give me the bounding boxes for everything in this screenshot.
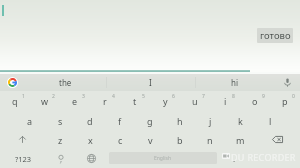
staticText: k bbox=[238, 115, 243, 127]
staticText: b bbox=[177, 134, 183, 146]
button[interactable]: Space bbox=[109, 152, 217, 164]
staticText: 5 bbox=[142, 93, 145, 100]
staticText: z bbox=[58, 134, 63, 146]
button[interactable]: c bbox=[105, 130, 135, 149]
button[interactable]: f bbox=[105, 111, 135, 130]
staticText: 2 bbox=[52, 93, 55, 100]
button[interactable]: q bbox=[0, 91, 30, 111]
staticText: 0 bbox=[292, 93, 295, 100]
staticText: q bbox=[12, 95, 18, 107]
staticText: p bbox=[282, 95, 288, 107]
button[interactable]: Shift bbox=[0, 130, 45, 149]
button[interactable]: y bbox=[150, 91, 180, 111]
button[interactable]: a bbox=[15, 111, 45, 130]
button[interactable]: l bbox=[255, 111, 285, 130]
button[interactable]: r bbox=[90, 91, 120, 111]
staticText: a bbox=[27, 115, 33, 127]
button[interactable]: Google Search bbox=[0, 74, 24, 91]
staticText: j bbox=[209, 115, 212, 127]
staticText: u bbox=[192, 95, 198, 107]
staticText: I bbox=[149, 77, 152, 88]
staticText: 4 bbox=[112, 93, 115, 100]
staticText: d bbox=[87, 115, 93, 127]
staticText: 6 bbox=[172, 93, 175, 100]
staticText: n bbox=[207, 134, 213, 146]
button[interactable]: v bbox=[135, 130, 165, 149]
button[interactable]: Emoji bbox=[46, 149, 76, 168]
staticText: 1 bbox=[22, 93, 25, 100]
staticText: l bbox=[269, 115, 272, 127]
button[interactable]: p bbox=[270, 91, 300, 111]
staticText: v bbox=[148, 134, 153, 146]
button[interactable]: hi bbox=[195, 74, 274, 91]
button[interactable]: g bbox=[135, 111, 165, 130]
staticText: w bbox=[41, 95, 49, 107]
button[interactable]: k bbox=[225, 111, 255, 130]
staticText: y bbox=[163, 95, 168, 107]
staticText: 9 bbox=[262, 93, 265, 100]
staticText: hi bbox=[231, 77, 239, 88]
staticText: e bbox=[72, 95, 78, 107]
button[interactable]: u bbox=[180, 91, 210, 111]
button[interactable]: s bbox=[45, 111, 75, 130]
button[interactable]: x bbox=[75, 130, 105, 149]
staticText: o bbox=[252, 95, 258, 107]
button[interactable]: e bbox=[60, 91, 90, 111]
button[interactable]: Change language bbox=[76, 149, 106, 168]
staticText: готово bbox=[260, 29, 291, 42]
staticText: i bbox=[224, 95, 227, 107]
button[interactable]: j bbox=[195, 111, 225, 130]
staticText: ?123 bbox=[15, 154, 32, 164]
staticText: 3 bbox=[82, 93, 85, 100]
staticText: c bbox=[118, 134, 123, 146]
button[interactable]: h bbox=[165, 111, 195, 130]
staticText: DU RECORDER bbox=[231, 151, 296, 163]
button[interactable]: ?123 bbox=[0, 149, 46, 168]
staticText: m bbox=[236, 134, 245, 146]
button[interactable]: b bbox=[165, 130, 195, 149]
button[interactable]: m bbox=[225, 130, 255, 149]
button[interactable]: I bbox=[106, 74, 195, 91]
button[interactable]: d bbox=[75, 111, 105, 130]
staticText: the bbox=[59, 77, 72, 88]
staticText: g bbox=[147, 115, 153, 127]
button[interactable]: o bbox=[240, 91, 270, 111]
button[interactable]: Backspace bbox=[255, 130, 300, 149]
button[interactable]: Enter bbox=[249, 149, 300, 168]
staticText: English bbox=[154, 155, 172, 162]
button[interactable]: i bbox=[210, 91, 240, 111]
button[interactable]: Voice input bbox=[274, 74, 300, 91]
button[interactable]: n bbox=[195, 130, 225, 149]
button[interactable]: the bbox=[24, 74, 106, 91]
staticText: r bbox=[103, 95, 107, 107]
staticText: s bbox=[58, 115, 63, 127]
staticText: t bbox=[133, 95, 137, 107]
staticText: h bbox=[177, 115, 183, 127]
staticText: x bbox=[88, 134, 93, 146]
button[interactable]: w bbox=[30, 91, 60, 111]
staticText: f bbox=[118, 115, 122, 127]
staticText: 8 bbox=[232, 93, 235, 100]
button[interactable]: . bbox=[219, 149, 249, 168]
staticText: 7 bbox=[202, 93, 205, 100]
button[interactable]: z bbox=[45, 130, 75, 149]
button[interactable]: t bbox=[120, 91, 150, 111]
staticText: . bbox=[233, 153, 236, 164]
button[interactable]: готово bbox=[257, 28, 293, 43]
